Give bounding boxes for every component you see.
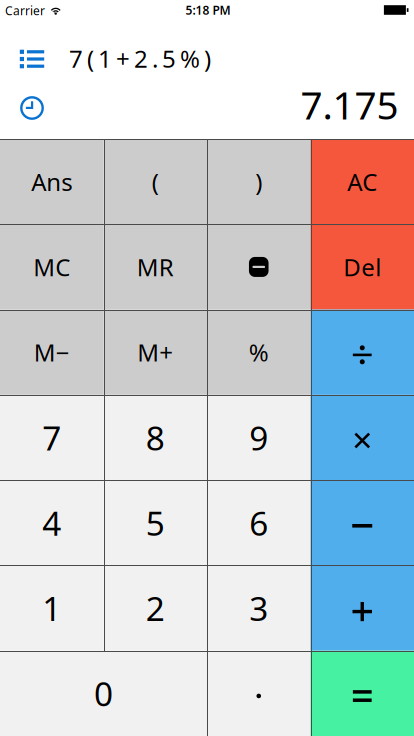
staticText: 7.175 xyxy=(300,79,398,130)
staticText: ) xyxy=(255,166,262,198)
button[interactable]: 8 xyxy=(103,395,207,480)
staticText: MR xyxy=(137,251,174,283)
staticText: Del xyxy=(343,251,381,283)
staticText: 6 xyxy=(249,501,268,545)
button[interactable]: 2 xyxy=(103,565,207,651)
button[interactable]: ) xyxy=(207,139,310,224)
staticText: Carrier xyxy=(5,2,45,18)
staticText: 3 xyxy=(249,586,268,630)
staticText: 9 xyxy=(249,415,268,460)
button[interactable]: History xyxy=(10,88,54,128)
button[interactable]: 9 xyxy=(207,395,310,480)
button[interactable]: 3 xyxy=(207,565,310,651)
button[interactable]: 5 xyxy=(103,480,207,565)
staticText: 0 xyxy=(94,671,113,715)
button[interactable]: Multiply xyxy=(310,395,414,480)
staticText: Ans xyxy=(31,166,72,198)
staticText: 8 xyxy=(146,415,165,460)
staticText: 2 xyxy=(146,586,165,630)
staticText: M+ xyxy=(137,336,173,368)
button[interactable]: Subtract xyxy=(310,480,414,565)
button[interactable]: M+ xyxy=(103,310,207,395)
button[interactable]: Memory subtract xyxy=(207,224,310,310)
staticText: AC xyxy=(347,166,377,198)
staticText: 1 xyxy=(42,586,61,630)
staticText: M− xyxy=(34,336,70,368)
button[interactable]: AC xyxy=(310,139,414,224)
staticText: 7(1+2.5%) xyxy=(69,43,211,74)
button[interactable]: MC xyxy=(0,224,103,310)
button[interactable]: Del xyxy=(310,224,414,310)
button[interactable]: Ans xyxy=(0,139,103,224)
button[interactable]: 6 xyxy=(207,480,310,565)
button[interactable]: M− xyxy=(0,310,103,395)
button[interactable]: 0 xyxy=(0,651,207,736)
staticText: MC xyxy=(33,251,70,283)
button[interactable]: Divide xyxy=(310,310,414,395)
button[interactable]: Equals xyxy=(310,651,414,736)
button[interactable]: History list xyxy=(10,39,54,79)
button[interactable]: MR xyxy=(103,224,207,310)
staticText: 4 xyxy=(42,501,61,545)
button[interactable]: 4 xyxy=(0,480,103,565)
staticText: % xyxy=(249,336,269,368)
button[interactable]: Add xyxy=(310,565,414,651)
button[interactable]: 7 xyxy=(0,395,103,480)
staticText: 7 xyxy=(42,415,61,460)
staticText: ( xyxy=(152,166,159,198)
button[interactable]: 1 xyxy=(0,565,103,651)
staticText: 5 xyxy=(146,501,165,545)
staticText: 5:18 PM xyxy=(185,2,230,18)
button[interactable]: Decimal point xyxy=(207,651,310,736)
button[interactable]: ( xyxy=(103,139,207,224)
button[interactable]: % xyxy=(207,310,310,395)
